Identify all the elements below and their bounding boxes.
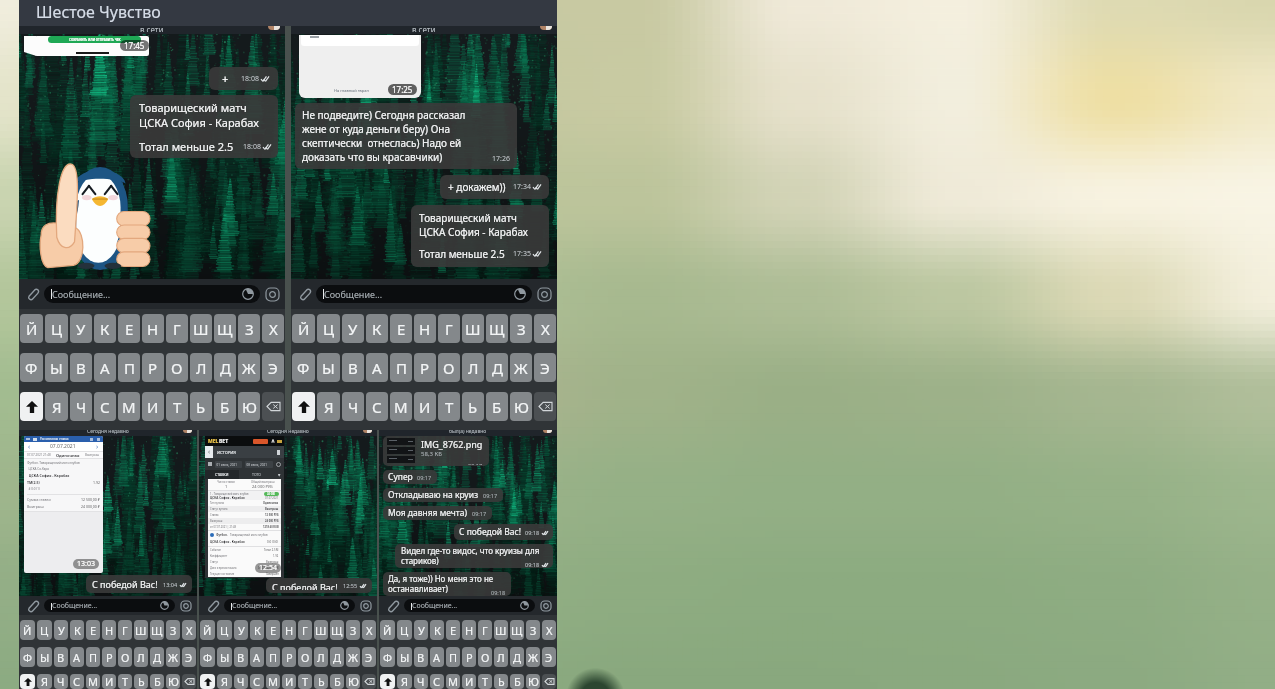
button[interactable]: С	[366, 392, 388, 421]
button[interactable]: Сегодня недавно	[199, 430, 377, 689]
button[interactable]: В	[54, 647, 68, 667]
button[interactable]: Щ	[510, 620, 524, 640]
button[interactable]: З	[510, 314, 532, 343]
button[interactable]: Ч	[70, 392, 92, 421]
button[interactable]: Э	[534, 353, 556, 382]
button[interactable]: Х	[542, 620, 556, 640]
button[interactable]: Г	[298, 620, 312, 640]
button[interactable]: Ц	[37, 620, 52, 640]
button[interactable]: Ц	[397, 620, 412, 640]
button[interactable]: Ф	[292, 353, 315, 382]
button[interactable]: Сообщение...	[224, 599, 355, 612]
button[interactable]: С	[94, 392, 116, 421]
button[interactable]: Н	[282, 620, 296, 640]
button[interactable]: З	[238, 314, 260, 343]
button[interactable]: Э	[262, 353, 284, 382]
button[interactable]: З	[346, 620, 360, 640]
button[interactable]: Shift	[380, 674, 395, 689]
button[interactable]: К	[430, 620, 444, 640]
button[interactable]: Ы	[317, 353, 340, 382]
button[interactable]: Г	[118, 620, 132, 640]
button[interactable]: Щ	[486, 314, 508, 343]
button[interactable]: Р	[282, 647, 296, 667]
button[interactable]: Н	[414, 314, 436, 343]
button[interactable]: Ш	[314, 620, 328, 640]
button[interactable]: К	[250, 620, 264, 640]
button[interactable]: С	[430, 674, 444, 689]
button[interactable]: И	[414, 392, 436, 421]
button[interactable]: Ч	[234, 674, 248, 689]
button[interactable]: Ш	[494, 620, 508, 640]
button[interactable]: Д	[214, 353, 236, 382]
button[interactable]: Л	[134, 647, 148, 667]
button[interactable]: Н	[102, 620, 116, 640]
button[interactable]: Backspace	[362, 674, 376, 689]
button[interactable]: У	[342, 314, 364, 343]
button[interactable]: Е	[266, 620, 280, 640]
button[interactable]: Ф	[20, 647, 35, 667]
button[interactable]: Ш	[462, 314, 484, 343]
button[interactable]: М	[266, 674, 280, 689]
button[interactable]: Р	[462, 647, 476, 667]
button[interactable]: Д	[486, 353, 508, 382]
button[interactable]: Ж	[346, 647, 360, 667]
button[interactable]: А	[366, 353, 388, 382]
button[interactable]: З	[166, 620, 180, 640]
button[interactable]: А	[94, 353, 116, 382]
button[interactable]: Й	[380, 620, 395, 640]
button[interactable]: Backspace	[262, 392, 284, 421]
button[interactable]: Э	[182, 647, 196, 667]
button[interactable]: К	[70, 620, 84, 640]
button[interactable]: Ф	[20, 353, 43, 382]
button[interactable]: О	[478, 647, 492, 667]
button[interactable]: Ю	[166, 674, 180, 689]
button[interactable]: Т	[118, 674, 132, 689]
button[interactable]: Л	[314, 647, 328, 667]
button[interactable]: Ы	[37, 647, 52, 667]
button[interactable]: Р	[102, 647, 116, 667]
button[interactable]: Е	[446, 620, 460, 640]
button[interactable]: Щ	[330, 620, 344, 640]
button[interactable]: О	[118, 647, 132, 667]
button[interactable]: К	[366, 314, 388, 343]
button[interactable]: А	[70, 647, 84, 667]
button[interactable]: Ь	[190, 392, 212, 421]
button[interactable]: О	[298, 647, 312, 667]
button[interactable]: Ц	[317, 314, 340, 343]
button[interactable]: Я	[37, 674, 52, 689]
button[interactable]: О	[166, 353, 188, 382]
button[interactable]: Т	[298, 674, 312, 689]
button[interactable]: Э	[542, 647, 556, 667]
button[interactable]: Н	[462, 620, 476, 640]
button[interactable]: С	[70, 674, 84, 689]
button[interactable]: Ч	[54, 674, 68, 689]
button[interactable]: И	[462, 674, 476, 689]
button[interactable]: в сети	[291, 26, 557, 430]
button[interactable]: В	[70, 353, 92, 382]
button[interactable]: Й	[200, 620, 215, 640]
button[interactable]: И	[142, 392, 164, 421]
button[interactable]: П	[86, 647, 100, 667]
button[interactable]: Ь	[134, 674, 148, 689]
button[interactable]: Ы	[217, 647, 232, 667]
button[interactable]: П	[446, 647, 460, 667]
button[interactable]: Г	[478, 620, 492, 640]
button[interactable]: Т	[478, 674, 492, 689]
button[interactable]: Backspace	[542, 674, 556, 689]
button[interactable]: Н	[142, 314, 164, 343]
button[interactable]: Shift	[200, 674, 215, 689]
button[interactable]: Т	[438, 392, 460, 421]
button[interactable]: Г	[438, 314, 460, 343]
button[interactable]: Б	[486, 392, 508, 421]
button[interactable]: Ц	[217, 620, 232, 640]
button[interactable]: К	[94, 314, 116, 343]
button[interactable]: Ш	[190, 314, 212, 343]
button[interactable]: П	[118, 353, 140, 382]
button[interactable]: Х	[182, 620, 196, 640]
button[interactable]: И	[282, 674, 296, 689]
button[interactable]: Д	[330, 647, 344, 667]
button[interactable]: Г	[166, 314, 188, 343]
button[interactable]: Ц	[45, 314, 68, 343]
button[interactable]: Backspace	[534, 392, 556, 421]
button[interactable]: А	[250, 647, 264, 667]
